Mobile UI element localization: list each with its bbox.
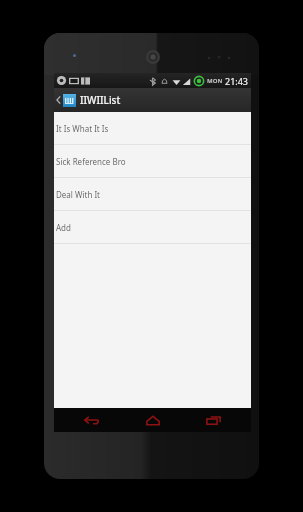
button[interactable]: Sick Reference Bro [54,145,251,177]
button[interactable]: Recent apps [190,408,236,432]
staticText: Add [56,222,71,233]
staticText: MON [207,77,223,85]
staticText: It Is What It Is [56,123,109,134]
staticText: Sick Reference Bro [56,156,126,167]
button[interactable]: Home [130,408,176,432]
button[interactable]: It Is What It Is [54,112,251,144]
button[interactable]: Back [69,408,115,432]
staticText: IIWIIList [80,93,121,107]
button[interactable]: Add [54,211,251,243]
staticText: 21:43 [225,75,249,87]
button[interactable]: IIWIIList [54,88,251,112]
staticText: Deal With It [56,189,100,200]
button[interactable]: Deal With It [54,178,251,210]
